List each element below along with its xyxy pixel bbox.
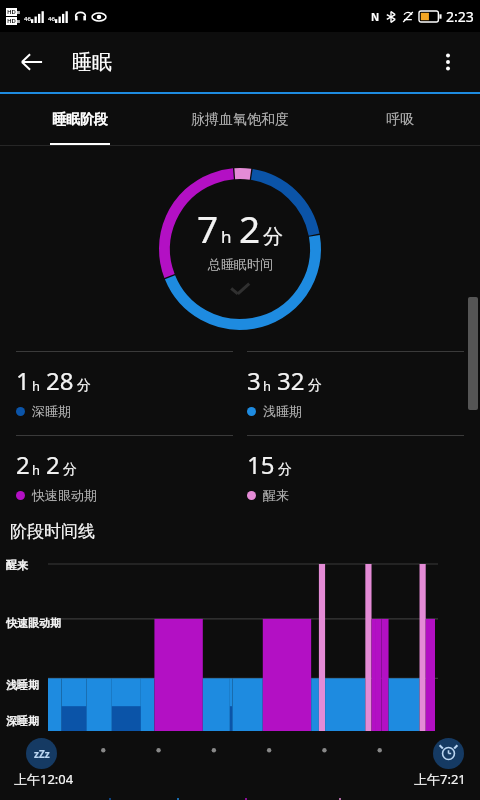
staticText: 分 [77,377,91,395]
staticText: 1 [16,364,30,397]
staticText: 2:23 [446,7,474,26]
staticText: 2 [16,448,30,481]
staticText: 睡眠 [72,50,112,75]
staticText: 醒来 [263,487,289,503]
button[interactable]: 脉搏血氧饱和度 [160,94,320,146]
staticText: 浅睡期 [263,403,302,419]
staticText: 快速眼动期 [32,487,97,503]
staticText: в [17,18,20,25]
staticText: 呼吸 [386,111,414,129]
staticText: 阶段时间线 [10,521,95,542]
button[interactable]: 快速眼动期 [241,798,321,800]
staticText: h [32,377,41,395]
staticText: 睡眠阶段 [52,111,108,129]
staticText: 分 [308,377,322,395]
button[interactable]: More options [424,38,472,86]
staticText: 上午7:21 [414,770,466,788]
staticText: 快速眼动期 [6,616,61,630]
button[interactable]: 浅睡期 [173,798,227,800]
button[interactable]: Wake alarm [433,738,464,769]
staticText: 46 [48,15,55,23]
button[interactable]: Sleep start [26,738,57,769]
button[interactable]: 3 [247,351,464,427]
button[interactable]: 15 [247,435,464,511]
staticText: 醒来 [6,558,28,572]
button[interactable]: Back [8,38,56,86]
staticText: 3 [247,364,261,397]
staticText: 总睡眠时间 [208,256,273,272]
button[interactable]: 深睡期 [105,798,159,800]
staticText: HD [7,17,16,25]
staticText: 深睡期 [32,403,71,419]
staticText: 分 [263,224,283,249]
staticText: 28 [46,364,74,397]
staticText: 分 [278,461,292,479]
staticText: 32 [277,364,305,397]
staticText: 7 [197,203,219,253]
staticText: N [371,10,380,24]
staticText: h [263,377,272,395]
staticText: 浅睡期 [6,678,39,692]
button[interactable]: 1 [16,351,233,427]
staticText: h [32,461,41,479]
staticText: h [221,225,232,248]
button[interactable]: 呼吸 [320,94,480,146]
button[interactable]: 醒来 [335,798,376,800]
staticText: 2 [46,448,60,481]
staticText: HD [7,8,16,16]
staticText: 46 [24,15,31,23]
staticText: 上午12:04 [14,770,74,788]
staticText: 深睡期 [6,714,39,728]
button[interactable]: 2 [16,435,233,511]
staticText: 脉搏血氧饱和度 [191,111,289,129]
staticText: 15 [247,448,275,481]
button[interactable]: 睡眠阶段 [0,94,160,146]
staticText: zZz [34,747,50,761]
staticText: в [17,9,20,16]
staticText: 2 [239,203,261,253]
staticText: 分 [63,461,77,479]
